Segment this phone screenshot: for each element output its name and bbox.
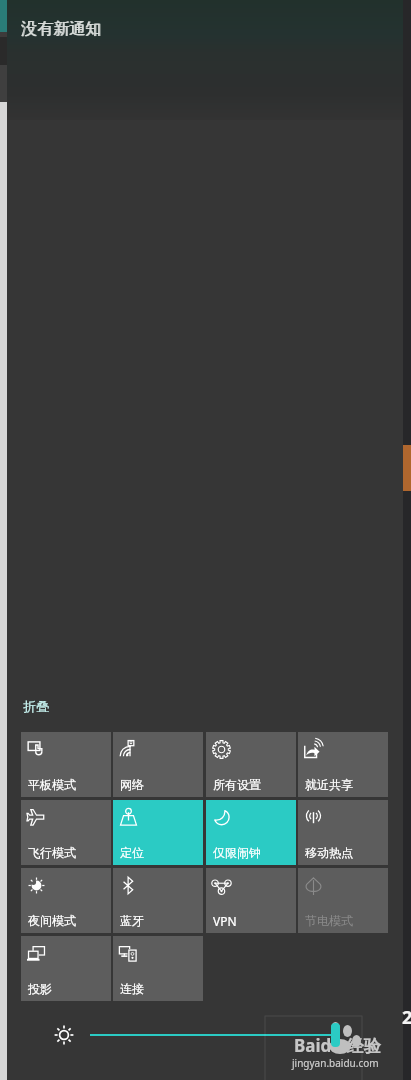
staticText: jingyan.baidu.com [292,1056,379,1070]
staticText: 没有新通知 [21,19,101,39]
staticText: 定位 [120,845,144,860]
button[interactable]: 节电模式 [298,868,388,933]
staticText: VPN [213,913,237,929]
staticText: 就近共享 [305,777,353,792]
button[interactable]: 投影 [21,936,111,1001]
staticText: 网络 [120,777,144,792]
staticText: 仅限闹钟 [213,845,261,860]
staticText: 投影 [28,981,52,996]
button[interactable]: 蓝牙 [113,868,203,933]
button[interactable]: Brightness slider [331,1023,340,1047]
staticText: 2 [402,1005,411,1030]
staticText: 蓝牙 [120,913,144,928]
staticText: 节电模式 [305,913,353,928]
button[interactable]: 连接 [113,936,203,1001]
staticText: 平板模式 [28,777,76,792]
button[interactable]: Brightness [54,1025,74,1045]
button[interactable]: 飞行模式 [21,800,111,865]
button[interactable]: 定位 [113,800,203,865]
staticText: 没有新通知 [22,19,102,39]
button[interactable]: 平板模式 [21,732,111,797]
staticText: 夜间模式 [28,913,76,928]
button[interactable]: 网络 [113,732,203,797]
button[interactable]: 夜间模式 [21,868,111,933]
button[interactable]: 仅限闹钟 [206,800,296,865]
staticText: 移动热点 [305,845,353,860]
staticText: 飞行模式 [28,845,76,860]
button[interactable]: 折叠 [19,695,53,717]
staticText: 连接 [120,981,144,996]
staticText: Baidu 经验 [294,1034,381,1057]
staticText: 所有设置 [213,777,261,792]
button[interactable]: VPN [206,868,296,933]
staticText: 折叠 [23,698,49,714]
button[interactable]: 所有设置 [206,732,296,797]
button[interactable]: 就近共享 [298,732,388,797]
button[interactable]: 移动热点 [298,800,388,865]
